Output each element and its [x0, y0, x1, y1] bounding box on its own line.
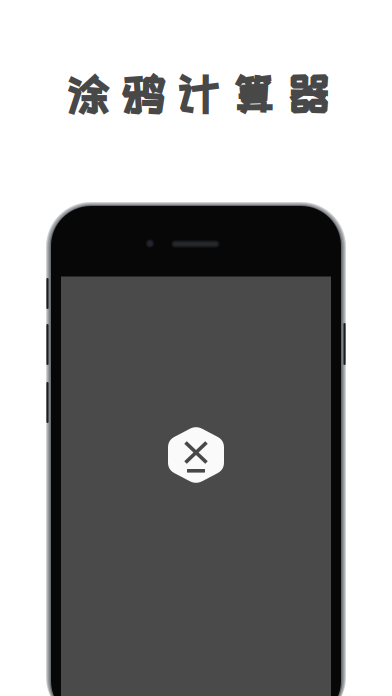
button[interactable]: 涂鸦计算器 [168, 425, 224, 484]
staticText: 涂鸦计算器 [67, 71, 329, 117]
